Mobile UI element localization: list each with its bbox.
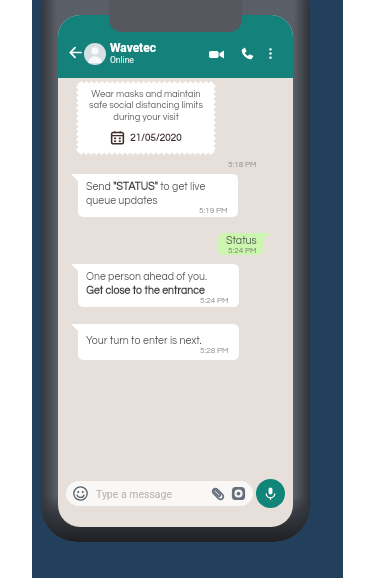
staticText: 5:28 PM bbox=[200, 346, 229, 354]
staticText: 5:19 PM bbox=[199, 206, 228, 214]
button[interactable]: Your turn to enter is next. bbox=[71, 324, 239, 360]
staticText: 21/05/2020 bbox=[130, 133, 182, 143]
button[interactable]: More options bbox=[261, 44, 279, 62]
staticText: One person ahead of you. Get close to th… bbox=[86, 271, 208, 296]
button[interactable]: Back bbox=[65, 42, 85, 62]
staticText: Wavetec bbox=[110, 41, 156, 55]
button[interactable]: Camera bbox=[230, 485, 247, 502]
button[interactable]: Voice message bbox=[256, 479, 285, 508]
button[interactable]: Call bbox=[238, 44, 256, 62]
staticText: 5:24 PM bbox=[228, 246, 257, 254]
button[interactable]: One person ahead of you. Get close to th… bbox=[71, 264, 239, 307]
staticText: Type a message bbox=[96, 488, 173, 500]
staticText: Send "STATUS" to get live queue updates bbox=[86, 181, 206, 206]
button[interactable]: Attach bbox=[209, 485, 226, 502]
staticText: 5:18 PM bbox=[228, 160, 257, 168]
staticText: Online bbox=[110, 55, 134, 65]
staticText: 5:24 PM bbox=[200, 296, 229, 304]
staticText: Your turn to enter is next. bbox=[86, 335, 202, 346]
button[interactable]: Send "STATUS" to get live queue updates bbox=[71, 174, 238, 217]
button[interactable]: Type a message bbox=[66, 481, 253, 506]
button[interactable]: Status bbox=[218, 233, 270, 255]
staticText: Wear masks and maintain safe social dist… bbox=[89, 89, 203, 122]
button[interactable]: Video call bbox=[206, 44, 226, 64]
staticText: Status bbox=[226, 235, 257, 246]
